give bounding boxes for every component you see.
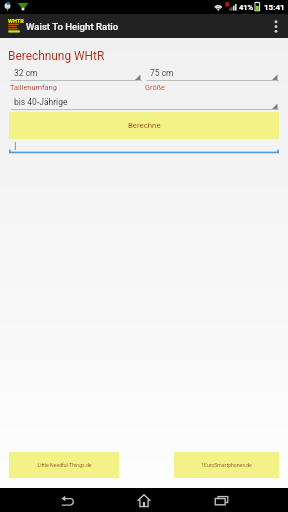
staticText: 41% <box>239 3 254 12</box>
staticText: 32 cm <box>14 68 38 78</box>
button[interactable]: Home <box>119 488 169 512</box>
staticText: Größe <box>145 83 165 92</box>
staticText: 15:41 <box>264 3 285 12</box>
button[interactable]: 1EuroSmartphones.de <box>174 452 279 478</box>
button[interactable]: Back <box>43 488 92 512</box>
button[interactable]: 32 cm <box>9 65 142 81</box>
staticText: Taillenumfang <box>10 83 57 92</box>
button[interactable]: 75 cm <box>145 65 279 81</box>
staticText: WHTR <box>8 18 24 25</box>
button[interactable]: Little-Needful-Things.de <box>9 452 119 478</box>
button[interactable]: Berechne <box>9 112 279 139</box>
staticText: Berechnung WHtR <box>8 49 105 63</box>
staticText: bis 40-Jährige <box>14 97 68 107</box>
button[interactable]: More options <box>264 14 288 38</box>
button[interactable]: bis 40-Jährige <box>9 94 279 110</box>
staticText: Berechne <box>128 121 161 130</box>
staticText: 75 cm <box>150 68 174 78</box>
staticText: Waist To Height Ratio <box>26 21 119 32</box>
staticText: 1EuroSmartphones.de <box>201 462 252 468</box>
staticText: Little-Needful-Things.de <box>37 462 92 468</box>
button[interactable]: Recent apps <box>197 488 246 512</box>
